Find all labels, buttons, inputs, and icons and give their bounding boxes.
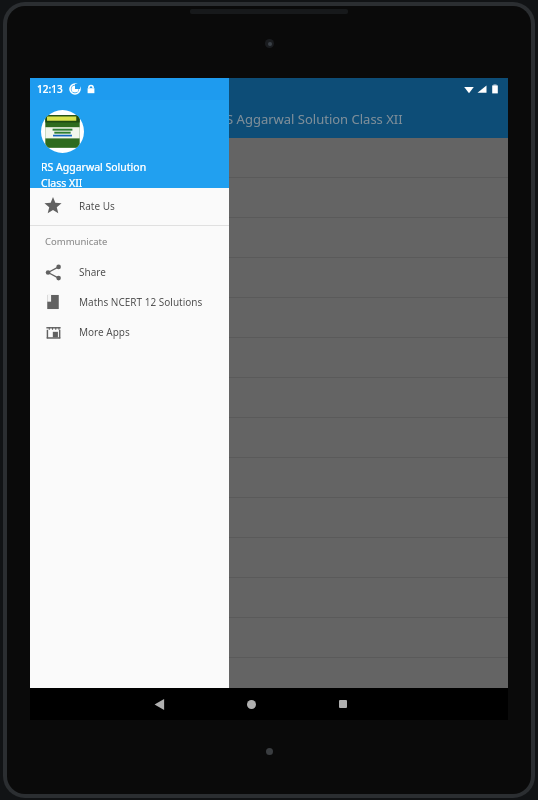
- button[interactable]: Back: [144, 689, 174, 719]
- button[interactable]: Recent apps: [328, 689, 358, 719]
- button[interactable]: [30, 258, 508, 297]
- button[interactable]: Maths NCERT 12 Solutions: [30, 287, 229, 317]
- button[interactable]: More Apps: [30, 317, 229, 347]
- button[interactable]: [30, 538, 508, 577]
- staticText: More Apps: [79, 325, 130, 339]
- staticText: Maths NCERT 12 Solutions: [79, 295, 203, 309]
- button[interactable]: RS Aggarwal Solution: [30, 100, 229, 188]
- button[interactable]: [30, 378, 508, 417]
- button[interactable]: Rate Us: [30, 191, 229, 221]
- button[interactable]: [30, 138, 508, 177]
- staticText: RS Aggarwal Solution Class XII: [218, 110, 403, 128]
- staticText: 12:13: [37, 82, 63, 96]
- button[interactable]: [30, 618, 508, 657]
- button[interactable]: [30, 658, 508, 688]
- staticText: RS Aggarwal Solution: [41, 160, 147, 174]
- button[interactable]: [30, 498, 508, 537]
- button[interactable]: [30, 578, 508, 617]
- button[interactable]: [30, 298, 508, 337]
- button[interactable]: [30, 458, 508, 497]
- staticText: Class XII: [41, 176, 83, 188]
- staticText: Communicate: [45, 235, 108, 248]
- button[interactable]: [30, 418, 508, 457]
- button[interactable]: Home: [236, 689, 266, 719]
- button[interactable]: Share: [30, 257, 229, 287]
- staticText: Rate Us: [79, 199, 115, 213]
- staticText: Share: [79, 265, 106, 279]
- button[interactable]: [30, 218, 508, 257]
- button[interactable]: [30, 338, 508, 377]
- button[interactable]: [30, 178, 508, 217]
